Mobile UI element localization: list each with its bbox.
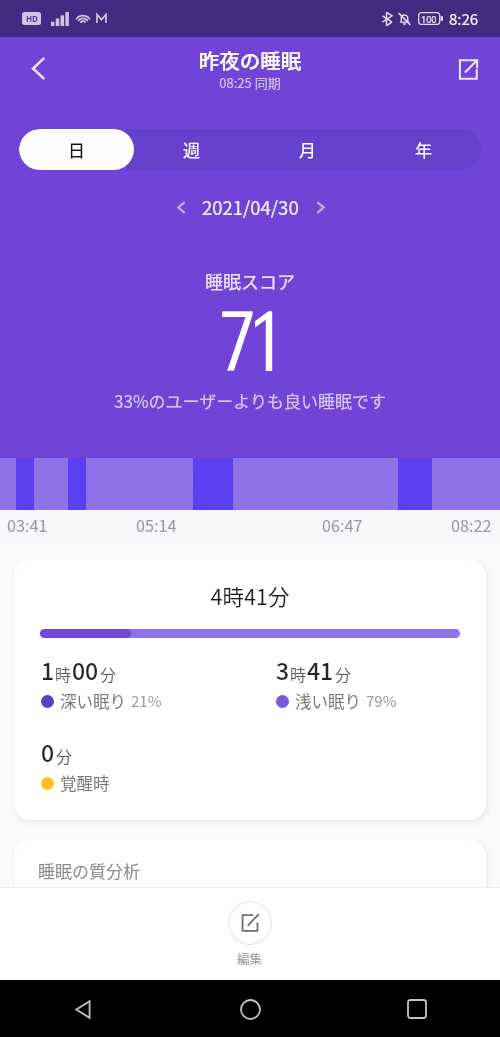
- staticText: 覚醒時: [60, 771, 110, 795]
- button[interactable]: 睡眠の質分析: [14, 840, 486, 960]
- staticText: 3: [276, 653, 290, 686]
- button[interactable]: 年: [365, 129, 481, 170]
- staticText: 06:47: [322, 513, 363, 536]
- staticText: 08:22: [451, 513, 492, 536]
- staticText: 時: [55, 662, 72, 685]
- staticText: 編集: [237, 949, 263, 967]
- button[interactable]: Share: [445, 47, 489, 91]
- staticText: 月: [299, 137, 316, 162]
- button[interactable]: Back: [59, 985, 107, 1033]
- button[interactable]: 月: [249, 129, 365, 170]
- button[interactable]: Recent apps: [393, 985, 441, 1033]
- staticText: 79%: [366, 690, 397, 712]
- staticText: 日: [68, 137, 85, 162]
- button[interactable]: 週: [134, 129, 249, 170]
- staticText: 時: [290, 662, 307, 685]
- staticText: 2021/04/30: [202, 194, 299, 221]
- staticText: 41: [307, 653, 334, 686]
- staticText: 深い眠り: [60, 689, 126, 713]
- staticText: 睡眠スコア: [0, 268, 500, 294]
- button[interactable]: Back: [14, 46, 58, 90]
- staticText: 分: [335, 662, 352, 685]
- staticText: 0: [41, 735, 55, 768]
- button[interactable]: 日: [19, 129, 134, 170]
- staticText: 1: [41, 653, 55, 686]
- staticText: 週: [183, 137, 200, 162]
- staticText: 昨夜の睡眠: [0, 45, 500, 75]
- staticText: 33%のユーザーよりも良い睡眠です: [0, 388, 500, 413]
- button[interactable]: 編集: [0, 888, 500, 980]
- staticText: 100: [421, 13, 437, 25]
- staticText: HD: [26, 13, 38, 24]
- staticText: 03:41: [7, 513, 48, 536]
- staticText: 睡眠の質分析: [38, 858, 140, 883]
- button[interactable]: Next day: [301, 188, 339, 226]
- staticText: 05:14: [136, 513, 177, 536]
- button[interactable]: Home: [226, 985, 274, 1033]
- staticText: 00: [72, 653, 99, 686]
- staticText: 分: [100, 662, 117, 685]
- staticText: 21%: [131, 690, 162, 712]
- staticText: 8:26: [449, 8, 479, 30]
- staticText: 4時41分: [14, 580, 486, 611]
- staticText: 08:25 同期: [0, 73, 500, 92]
- staticText: 浅い眠り: [295, 689, 361, 713]
- button[interactable]: Previous day: [162, 188, 200, 226]
- staticText: 71: [0, 290, 500, 389]
- staticText: 分: [56, 744, 73, 767]
- staticText: 年: [415, 137, 432, 162]
